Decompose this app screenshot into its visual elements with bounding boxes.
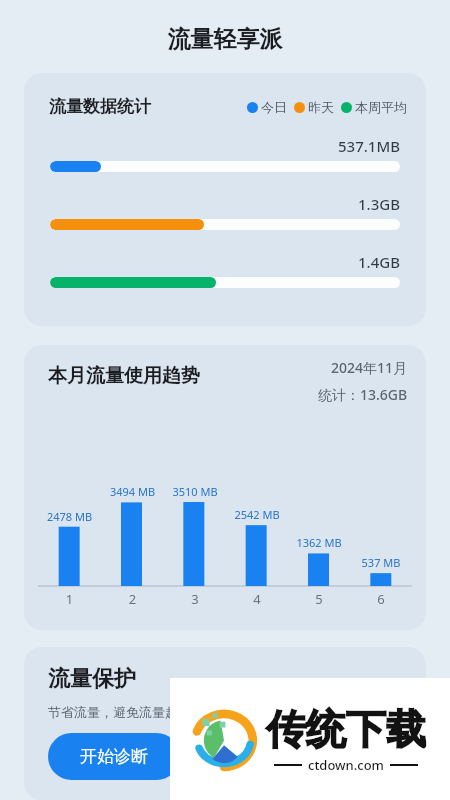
staticText: 1362 MB — [288, 535, 350, 550]
staticText: 1 — [38, 590, 101, 608]
staticText: 2 — [101, 590, 164, 608]
button[interactable]: 本月流量使用趋势 — [24, 345, 426, 630]
staticText: 537 MB — [350, 555, 412, 570]
staticText: 流量保护 — [48, 665, 136, 693]
button[interactable]: 开始诊断 — [48, 733, 180, 780]
staticText: 537.1MB — [50, 136, 400, 156]
staticText: 4 — [226, 590, 288, 608]
staticText: 5 — [288, 590, 350, 608]
staticText: 昨天 — [308, 99, 334, 115]
staticText: 3494 MB — [101, 484, 164, 499]
staticText: 开始诊断 — [80, 746, 148, 767]
staticText: 统计：13.6GB — [318, 385, 408, 404]
staticText: 2478 MB — [38, 509, 101, 524]
staticText: 节省流量，避免流量超额 — [48, 704, 191, 720]
staticText: 6 — [350, 590, 412, 608]
button[interactable]: 流量数据统计 — [24, 73, 426, 326]
staticText: 1.4GB — [50, 252, 400, 272]
staticText: 本月流量使用趋势 — [48, 364, 200, 388]
staticText: 3510 MB — [164, 484, 226, 499]
staticText: 1.3GB — [50, 194, 400, 214]
staticText: 今日 — [261, 99, 287, 115]
staticText: 2542 MB — [226, 507, 288, 522]
staticText: 流量数据统计 — [49, 96, 151, 117]
staticText: 3 — [164, 590, 226, 608]
staticText: ctdown.com — [308, 756, 384, 774]
staticText: 本周平均 — [355, 99, 407, 115]
staticText: 传统下载 — [266, 704, 426, 754]
staticText: 2024年11月 — [331, 358, 408, 377]
staticText: 流量轻享派 — [0, 25, 450, 54]
